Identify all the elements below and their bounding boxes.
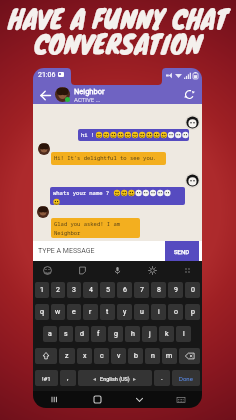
button[interactable]: SEND bbox=[165, 241, 199, 261]
staticText: e bbox=[72, 308, 76, 316]
staticText: x bbox=[83, 352, 87, 360]
button[interactable]: y bbox=[117, 304, 132, 320]
button[interactable]: c bbox=[94, 348, 109, 364]
button[interactable]: More bbox=[182, 265, 193, 276]
button[interactable]: z bbox=[59, 348, 75, 364]
button[interactable]: Hide keyboard bbox=[134, 394, 145, 405]
button[interactable]: Refresh bbox=[182, 87, 197, 102]
staticText: i bbox=[158, 308, 160, 316]
staticText: English (US) bbox=[100, 376, 130, 382]
button[interactable]: i bbox=[151, 304, 166, 320]
staticText: r bbox=[89, 308, 92, 316]
button[interactable]: d bbox=[75, 326, 89, 342]
button[interactable]: Hi! It's delightful to see you. bbox=[51, 152, 166, 165]
button[interactable]: k bbox=[159, 326, 174, 342]
button[interactable]: r bbox=[83, 304, 98, 320]
staticText: 8 bbox=[157, 286, 161, 294]
staticText: 9 bbox=[174, 286, 178, 294]
staticText: y bbox=[123, 308, 127, 316]
button[interactable]: 9 bbox=[168, 282, 183, 298]
button[interactable]: Sticker bbox=[77, 265, 88, 276]
staticText: 0 bbox=[191, 286, 195, 294]
button[interactable]: Home bbox=[92, 394, 103, 405]
button[interactable]: ◂ bbox=[78, 370, 152, 386]
staticText: c bbox=[100, 352, 104, 360]
staticText: z bbox=[65, 352, 69, 360]
staticText: ACTIVE ... bbox=[74, 96, 101, 103]
staticText: CONVERSATION bbox=[34, 24, 202, 63]
button[interactable]: Keyboard bbox=[176, 395, 186, 405]
staticText: b bbox=[134, 352, 138, 360]
button[interactable]: 4 bbox=[83, 282, 98, 298]
staticText: SEND bbox=[174, 248, 190, 255]
button[interactable]: w bbox=[51, 304, 65, 320]
staticText: Hi! It's delightful to see you. bbox=[54, 154, 157, 161]
button[interactable]: key bbox=[35, 348, 57, 364]
button[interactable]: f bbox=[91, 326, 106, 342]
staticText: d bbox=[80, 330, 84, 338]
button[interactable]: Done bbox=[172, 370, 200, 386]
button[interactable]: h bbox=[125, 326, 140, 342]
staticText: 4 bbox=[89, 286, 93, 294]
button[interactable]: x bbox=[77, 348, 92, 364]
staticText: t bbox=[106, 308, 109, 316]
staticText: m bbox=[166, 352, 173, 360]
staticText: ▸ bbox=[133, 375, 137, 382]
button[interactable]: n bbox=[145, 348, 160, 364]
button[interactable]: j bbox=[142, 326, 157, 342]
button[interactable]: q bbox=[35, 304, 49, 320]
button[interactable]: whats your name ? bbox=[50, 187, 185, 205]
staticText: Done bbox=[179, 375, 193, 382]
button[interactable]: TYPE A MESSAGE bbox=[38, 247, 165, 255]
staticText: j bbox=[149, 330, 151, 338]
button[interactable]: a bbox=[43, 326, 57, 342]
button[interactable]: m bbox=[162, 348, 177, 364]
button[interactable]: t bbox=[100, 304, 115, 320]
button[interactable]: g bbox=[108, 326, 123, 342]
staticText: HAVE A FUNNY CHAT bbox=[8, 0, 228, 38]
button[interactable]: Settings bbox=[147, 265, 158, 276]
button[interactable]: Glad you asked! I am Neighbor bbox=[51, 218, 140, 238]
button[interactable]: p bbox=[185, 304, 200, 320]
staticText: !#1 bbox=[42, 375, 51, 382]
button[interactable]: , bbox=[60, 370, 76, 386]
button[interactable]: hi ! bbox=[78, 129, 189, 141]
staticText: 3 bbox=[72, 286, 76, 294]
staticText: 7 bbox=[140, 286, 144, 294]
button[interactable]: s bbox=[59, 326, 73, 342]
button[interactable]: 2 bbox=[51, 282, 65, 298]
button[interactable]: 0 bbox=[185, 282, 200, 298]
button[interactable]: 3 bbox=[67, 282, 81, 298]
staticText: k bbox=[165, 330, 169, 338]
button[interactable]: l bbox=[176, 326, 191, 342]
staticText: Neighbor bbox=[74, 87, 105, 96]
button[interactable]: Recents bbox=[49, 394, 60, 405]
button[interactable]: v bbox=[111, 348, 126, 364]
button[interactable]: e bbox=[67, 304, 81, 320]
button[interactable]: !#1 bbox=[35, 370, 58, 386]
staticText: 21:06 bbox=[38, 71, 56, 79]
button[interactable]: o bbox=[168, 304, 183, 320]
staticText: 6 bbox=[123, 286, 127, 294]
button[interactable]: 5 bbox=[100, 282, 115, 298]
button[interactable]: 7 bbox=[134, 282, 149, 298]
button[interactable]: Mic bbox=[112, 265, 123, 276]
button[interactable]: b bbox=[128, 348, 143, 364]
button[interactable]: 8 bbox=[151, 282, 166, 298]
button[interactable]: Back bbox=[38, 88, 52, 102]
staticText: l bbox=[183, 330, 185, 338]
staticText: h bbox=[131, 330, 135, 338]
button[interactable]: Emoji bbox=[42, 265, 53, 276]
button[interactable]: u bbox=[134, 304, 149, 320]
button[interactable]: 6 bbox=[117, 282, 132, 298]
staticText: v bbox=[117, 352, 121, 360]
button[interactable]: . bbox=[154, 370, 170, 386]
staticText: 5 bbox=[106, 286, 110, 294]
staticText: ◂ bbox=[93, 375, 97, 382]
staticText: 1 bbox=[40, 286, 44, 294]
button[interactable]: key bbox=[179, 348, 200, 364]
staticText: w bbox=[55, 308, 61, 316]
staticText: o bbox=[174, 308, 178, 316]
staticText: hi ! bbox=[81, 131, 95, 138]
button[interactable]: 1 bbox=[35, 282, 49, 298]
